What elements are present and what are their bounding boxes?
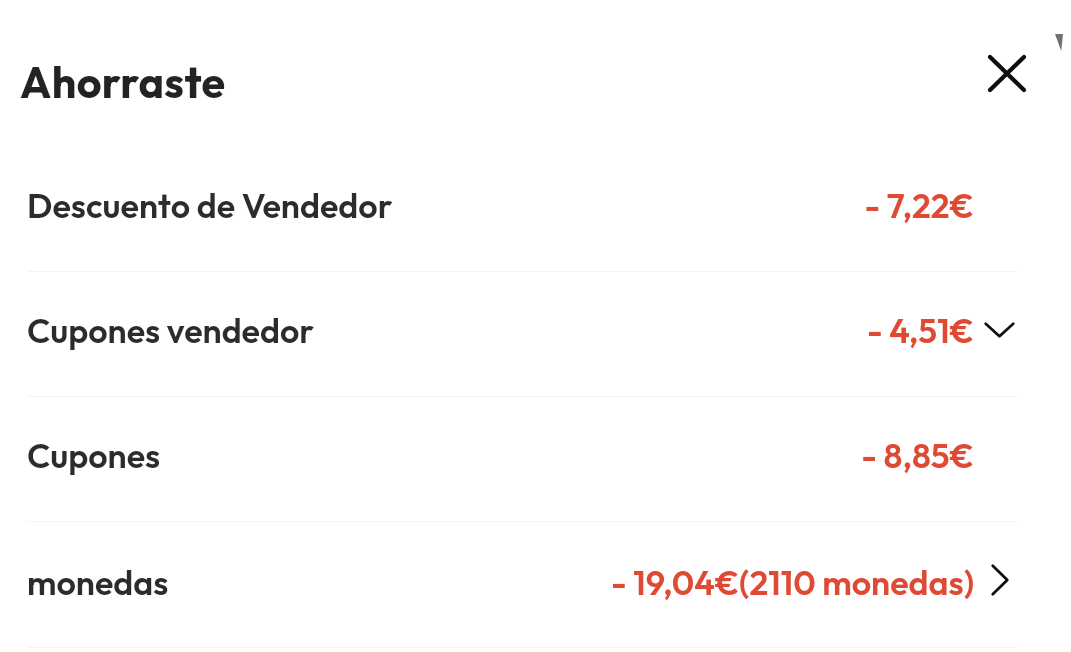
staticText: - 19,04€(2110 monedas) bbox=[0, 561, 974, 604]
button[interactable]: Close bbox=[975, 40, 1039, 107]
button[interactable]: Cupones bbox=[0, 396, 1071, 521]
other: Expand coupon details bbox=[984, 322, 1015, 338]
staticText: Cupones vendedor bbox=[27, 309, 315, 352]
staticText: - 7,22€ bbox=[0, 184, 974, 227]
staticText: Cupones bbox=[27, 434, 161, 477]
button[interactable]: Descuento de Vendedor bbox=[0, 146, 1071, 271]
staticText: monedas bbox=[27, 561, 169, 604]
button[interactable]: monedas bbox=[0, 522, 1071, 647]
staticText: - 8,85€ bbox=[0, 434, 974, 477]
staticText: Descuento de Vendedor bbox=[27, 184, 393, 227]
staticText: - 4,51€ bbox=[0, 309, 974, 352]
other: Open coin details bbox=[991, 564, 1009, 596]
staticText: Ahorraste bbox=[20, 55, 226, 109]
button[interactable]: Cupones vendedor bbox=[0, 271, 1071, 396]
